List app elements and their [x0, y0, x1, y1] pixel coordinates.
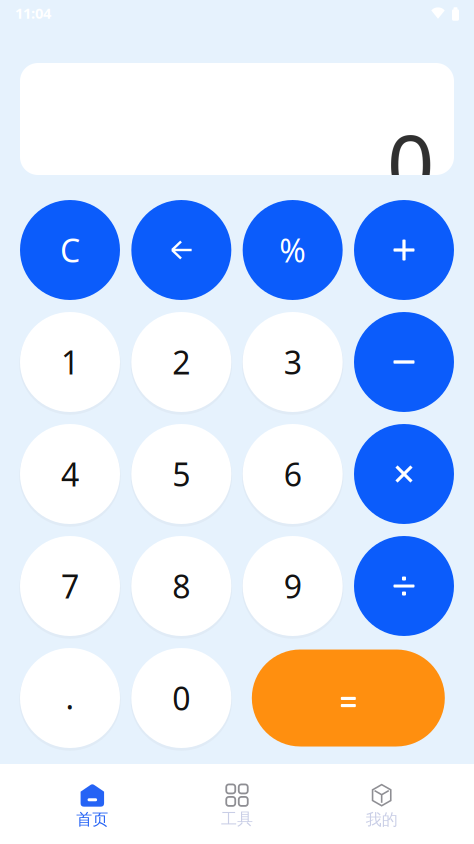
button[interactable]: 首页 [20, 764, 165, 844]
staticText: 6 [284, 453, 302, 495]
staticText: 4 [61, 453, 79, 495]
staticText: . [65, 676, 74, 718]
button[interactable]: 3 [243, 312, 343, 412]
button[interactable]: 工具 [165, 764, 309, 844]
staticText: % [279, 229, 306, 271]
button[interactable]: Minus [354, 312, 454, 412]
button[interactable]: C [20, 200, 120, 300]
staticText: 首页 [76, 810, 108, 829]
staticText: 0 [387, 107, 434, 217]
staticText: 3 [284, 341, 302, 383]
button[interactable]: Equals [243, 648, 454, 748]
button[interactable]: 5 [131, 424, 231, 524]
button[interactable]: Backspace [131, 200, 231, 300]
button[interactable]: 7 [20, 536, 120, 636]
button[interactable]: 4 [20, 424, 120, 524]
button[interactable]: . [20, 648, 120, 748]
staticText: 11:04 [15, 3, 51, 23]
staticText: 9 [284, 565, 302, 607]
button[interactable]: 我的 [309, 764, 454, 844]
button[interactable]: 6 [243, 424, 343, 524]
staticText: 工具 [221, 809, 253, 829]
staticText: 我的 [366, 810, 398, 830]
button[interactable]: Divide [354, 536, 454, 636]
staticText: 8 [172, 565, 190, 607]
staticText: 0 [172, 677, 190, 719]
button[interactable]: 2 [131, 312, 231, 412]
staticText: 1 [61, 341, 79, 383]
button[interactable]: 0 [131, 648, 231, 748]
button[interactable]: Multiply [354, 424, 454, 524]
staticText: 7 [61, 565, 79, 607]
staticText: 2 [172, 341, 190, 383]
button[interactable]: 9 [243, 536, 343, 636]
button[interactable]: 1 [20, 312, 120, 412]
staticText: 5 [172, 453, 190, 495]
button[interactable]: Plus [354, 200, 454, 300]
button[interactable]: 8 [131, 536, 231, 636]
button[interactable]: % [243, 200, 343, 300]
staticText: C [60, 229, 80, 271]
